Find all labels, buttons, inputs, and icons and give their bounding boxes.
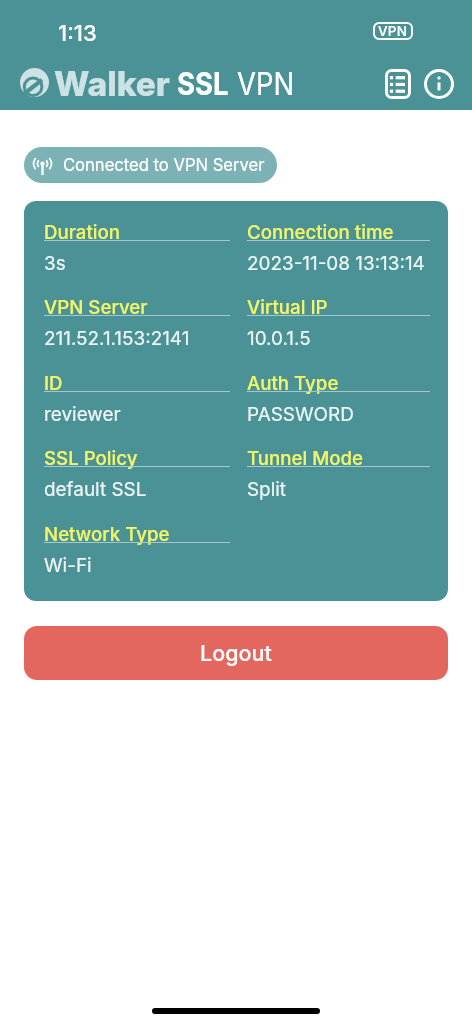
staticText: Wi-Fi <box>44 554 92 577</box>
staticText: Auth Type <box>247 372 339 395</box>
button[interactable]: Connected to VPN Server <box>24 147 277 183</box>
staticText: VPN <box>378 23 408 39</box>
staticText: ID <box>44 372 63 395</box>
staticText: Walker <box>54 64 170 105</box>
staticText: Connected to VPN Server <box>63 155 265 175</box>
staticText: Virtual IP <box>247 296 328 319</box>
staticText: VPN Server <box>44 296 148 319</box>
staticText: Tunnel Mode <box>247 447 364 470</box>
button[interactable]: Logout <box>24 626 448 680</box>
staticText: SSL <box>177 65 229 103</box>
staticText: Connection time <box>247 221 394 244</box>
staticText: PASSWORD <box>247 403 354 426</box>
staticText: VPN <box>237 65 294 103</box>
staticText: 1:13 <box>58 20 97 47</box>
staticText: 2023-11-08 13:13:14 <box>247 252 425 275</box>
staticText: SSL Policy <box>44 447 138 470</box>
staticText: 211.52.1.153:2141 <box>44 327 190 350</box>
button[interactable]: Connection log <box>377 63 418 104</box>
staticText: 10.0.1.5 <box>247 327 311 350</box>
staticText: Logout <box>200 640 272 666</box>
staticText: Network Type <box>44 523 170 546</box>
staticText: Duration <box>44 221 121 244</box>
staticText: reviewer <box>44 403 121 426</box>
staticText: 3s <box>44 252 66 275</box>
button[interactable]: About <box>418 63 459 104</box>
staticText: default SSL <box>44 478 147 501</box>
staticText: Split <box>247 478 287 501</box>
